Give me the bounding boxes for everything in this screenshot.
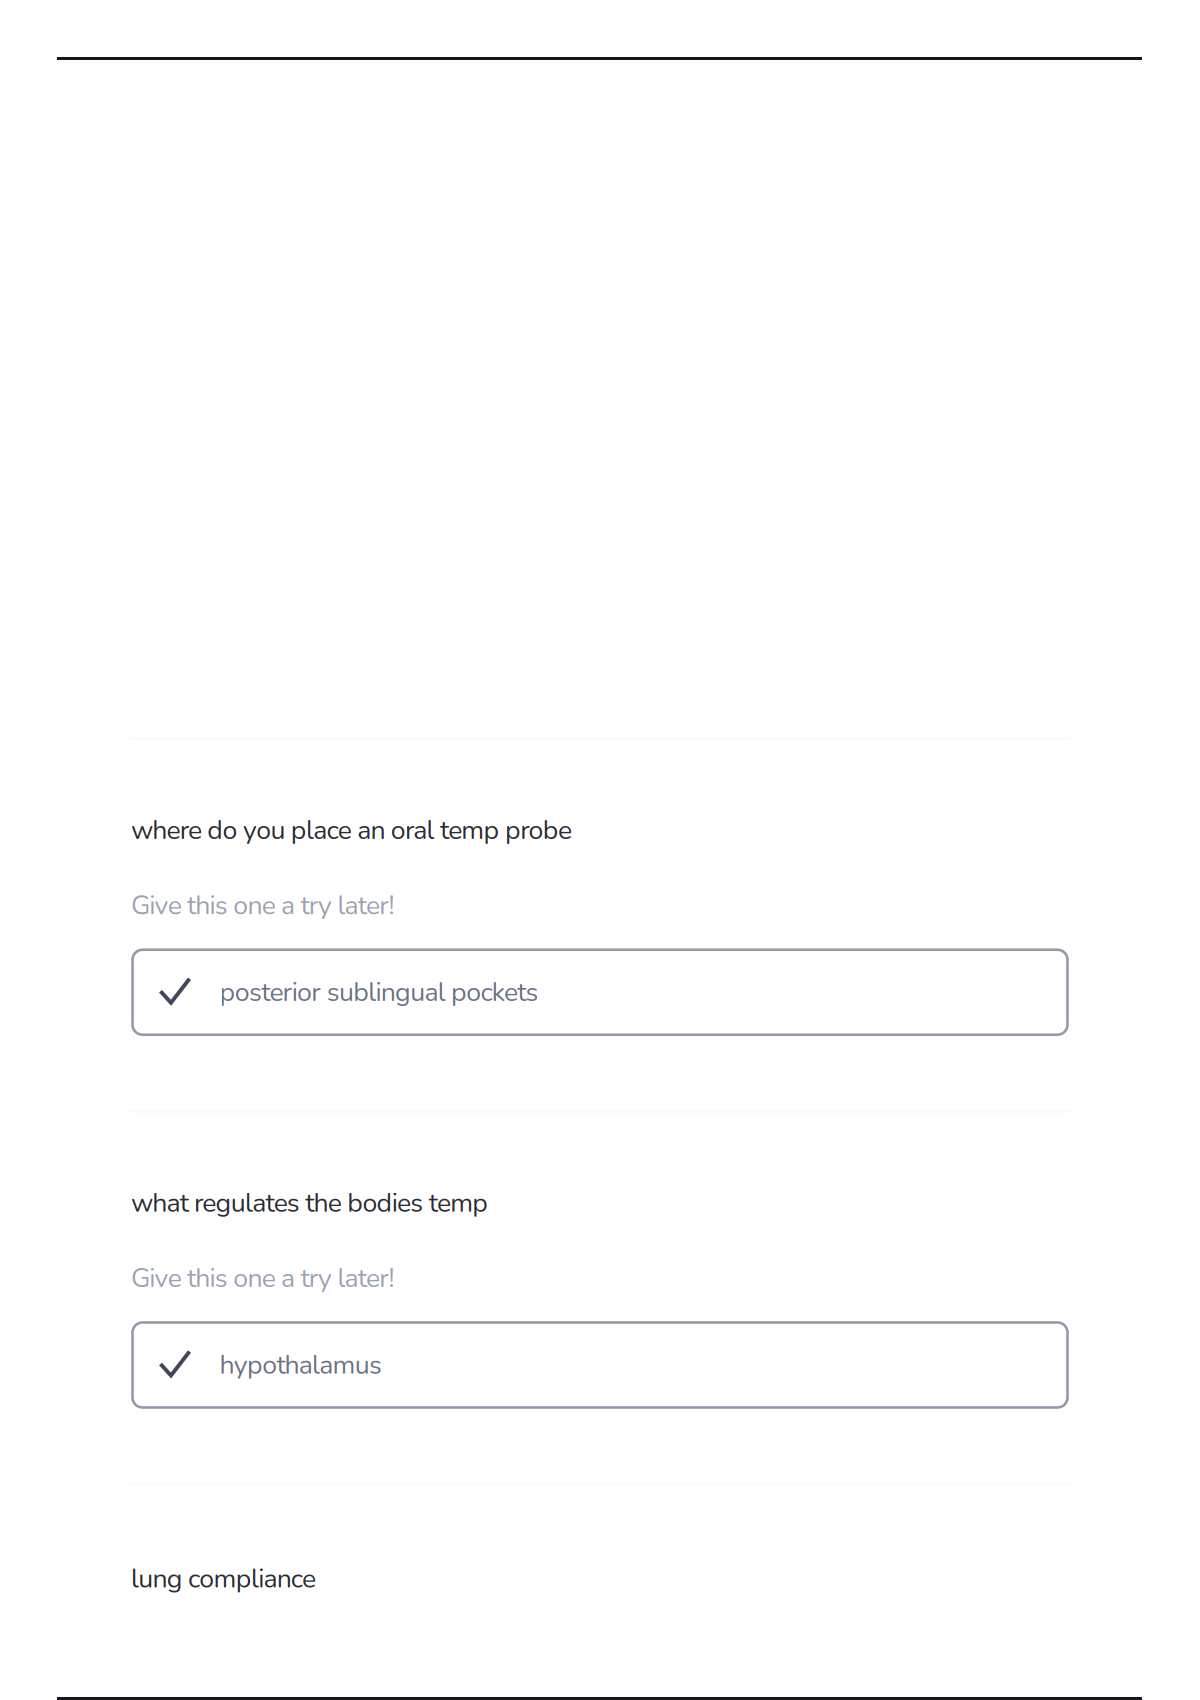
staticText: posterior sublingual pockets <box>219 974 538 1010</box>
staticText: what regulates the bodies temp <box>131 1185 488 1221</box>
staticText: hypothalamus <box>219 1347 382 1383</box>
staticText: where do you place an oral temp probe <box>131 812 572 848</box>
button[interactable]: hypothalamus <box>131 1322 1067 1407</box>
staticText: Give this one a try later! <box>131 1260 394 1296</box>
staticText: Give this one a try later! <box>131 887 394 924</box>
button[interactable]: lung compliance <box>131 1560 1069 1597</box>
button[interactable]: where do you place an oral temp probe <box>131 812 1069 1035</box>
staticText: lung compliance <box>131 1560 316 1597</box>
button[interactable]: posterior sublingual pockets <box>131 950 1067 1035</box>
button[interactable]: what regulates the bodies temp <box>131 1185 1069 1407</box>
